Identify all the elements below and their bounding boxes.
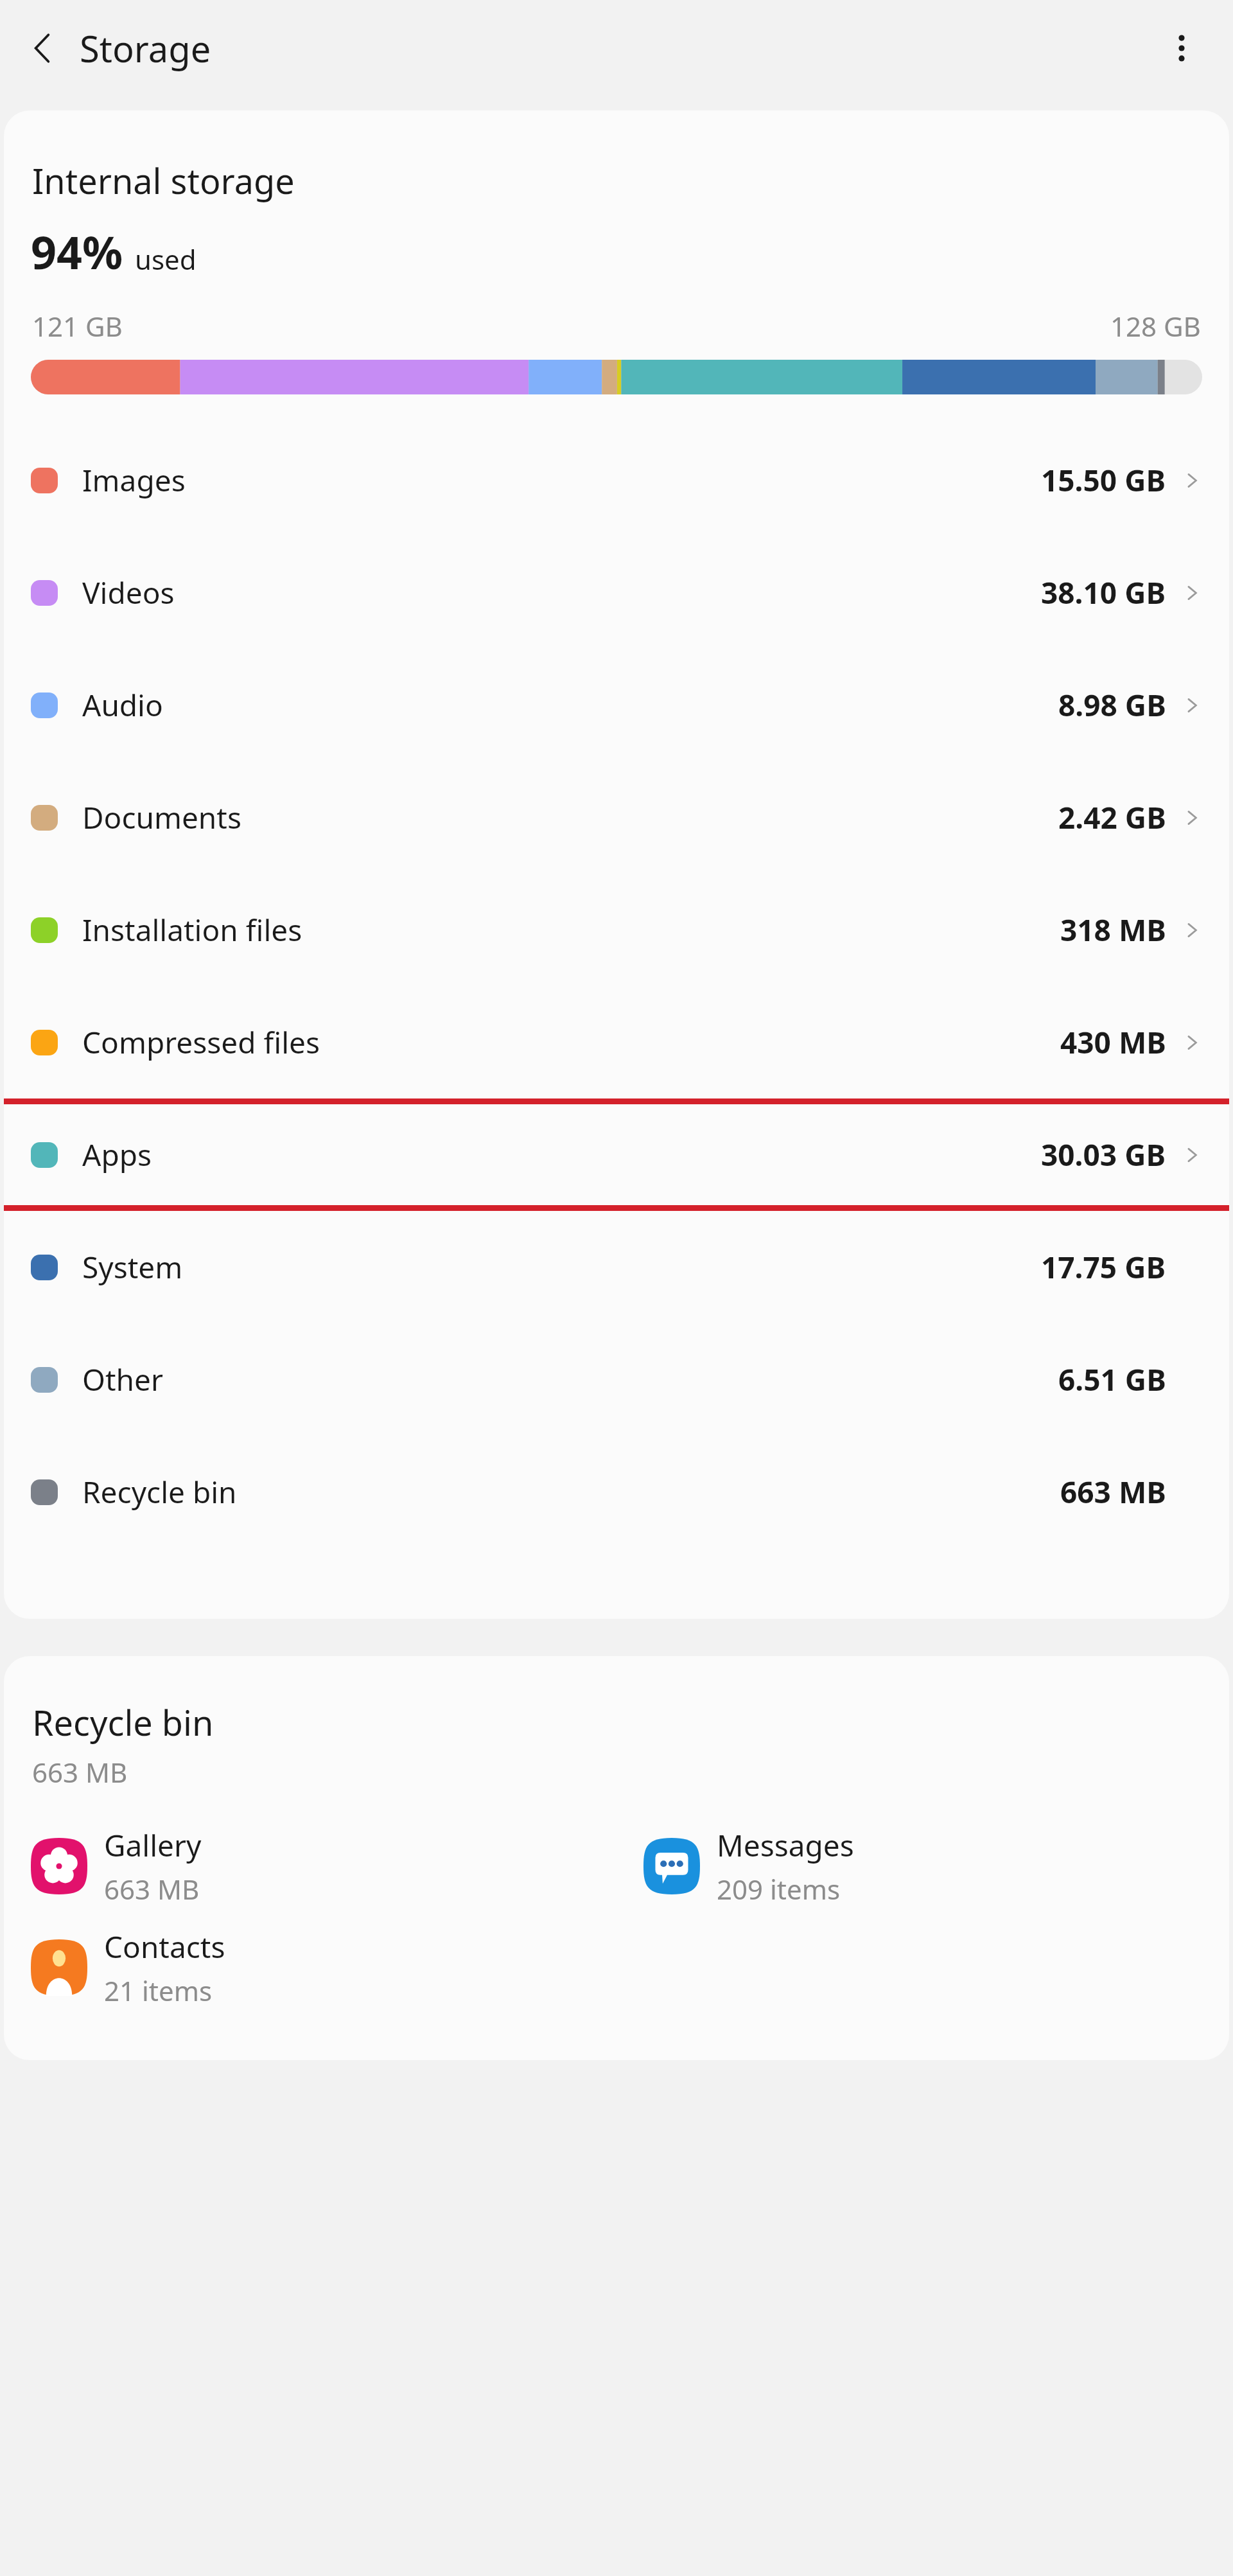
button[interactable]: Gallery: [31, 1825, 616, 1907]
button[interactable]: Images: [4, 424, 1229, 536]
staticText: Contacts: [104, 1927, 225, 1967]
button[interactable]: Compressed files: [4, 986, 1229, 1098]
button[interactable]: Other: [4, 1323, 1229, 1436]
staticText: 318 MB: [1060, 910, 1166, 950]
staticText: Storage: [80, 24, 211, 73]
staticText: Compressed files: [82, 1022, 320, 1063]
staticText: 94%: [31, 221, 123, 282]
button[interactable]: Installation files: [4, 874, 1229, 986]
staticText: Audio: [82, 685, 163, 725]
staticText: Recycle bin: [32, 1698, 214, 1746]
staticText: Internal storage: [32, 157, 295, 204]
staticText: 15.50 GB: [1041, 460, 1166, 500]
staticText: 663 MB: [32, 1754, 128, 1790]
button[interactable]: Recycle bin: [4, 1436, 1229, 1548]
staticText: 209 items: [717, 1871, 841, 1907]
staticText: Other: [82, 1359, 163, 1400]
button[interactable]: More options: [1152, 19, 1211, 78]
button[interactable]: System: [4, 1211, 1229, 1323]
button[interactable]: Apps: [4, 1098, 1229, 1211]
staticText: used: [135, 241, 197, 278]
staticText: Documents: [82, 797, 241, 838]
staticText: Apps: [82, 1134, 152, 1175]
staticText: Images: [82, 460, 186, 500]
staticText: 2.42 GB: [1058, 797, 1166, 838]
staticText: 128 GB: [1110, 308, 1201, 344]
staticText: 663 MB: [1060, 1472, 1166, 1512]
staticText: 38.10 GB: [1041, 572, 1166, 613]
staticText: 430 MB: [1060, 1022, 1166, 1063]
staticText: 30.03 GB: [1041, 1134, 1166, 1175]
staticText: Videos: [82, 572, 175, 613]
button[interactable]: Audio: [4, 649, 1229, 761]
staticText: 8.98 GB: [1058, 685, 1166, 725]
button[interactable]: Contacts: [31, 1927, 616, 2009]
staticText: System: [82, 1247, 183, 1287]
button[interactable]: Videos: [4, 536, 1229, 649]
button[interactable]: Messages: [643, 1825, 1229, 1907]
staticText: 17.75 GB: [1041, 1247, 1166, 1287]
staticText: 121 GB: [32, 308, 123, 344]
staticText: 6.51 GB: [1058, 1359, 1166, 1400]
staticText: Gallery: [104, 1825, 202, 1866]
staticText: Messages: [717, 1825, 854, 1866]
staticText: Recycle bin: [82, 1472, 237, 1512]
staticText: Installation files: [82, 910, 302, 950]
staticText: 663 MB: [104, 1871, 200, 1907]
staticText: 21 items: [104, 1972, 213, 2009]
button[interactable]: Documents: [4, 761, 1229, 874]
button[interactable]: Back: [14, 20, 71, 76]
